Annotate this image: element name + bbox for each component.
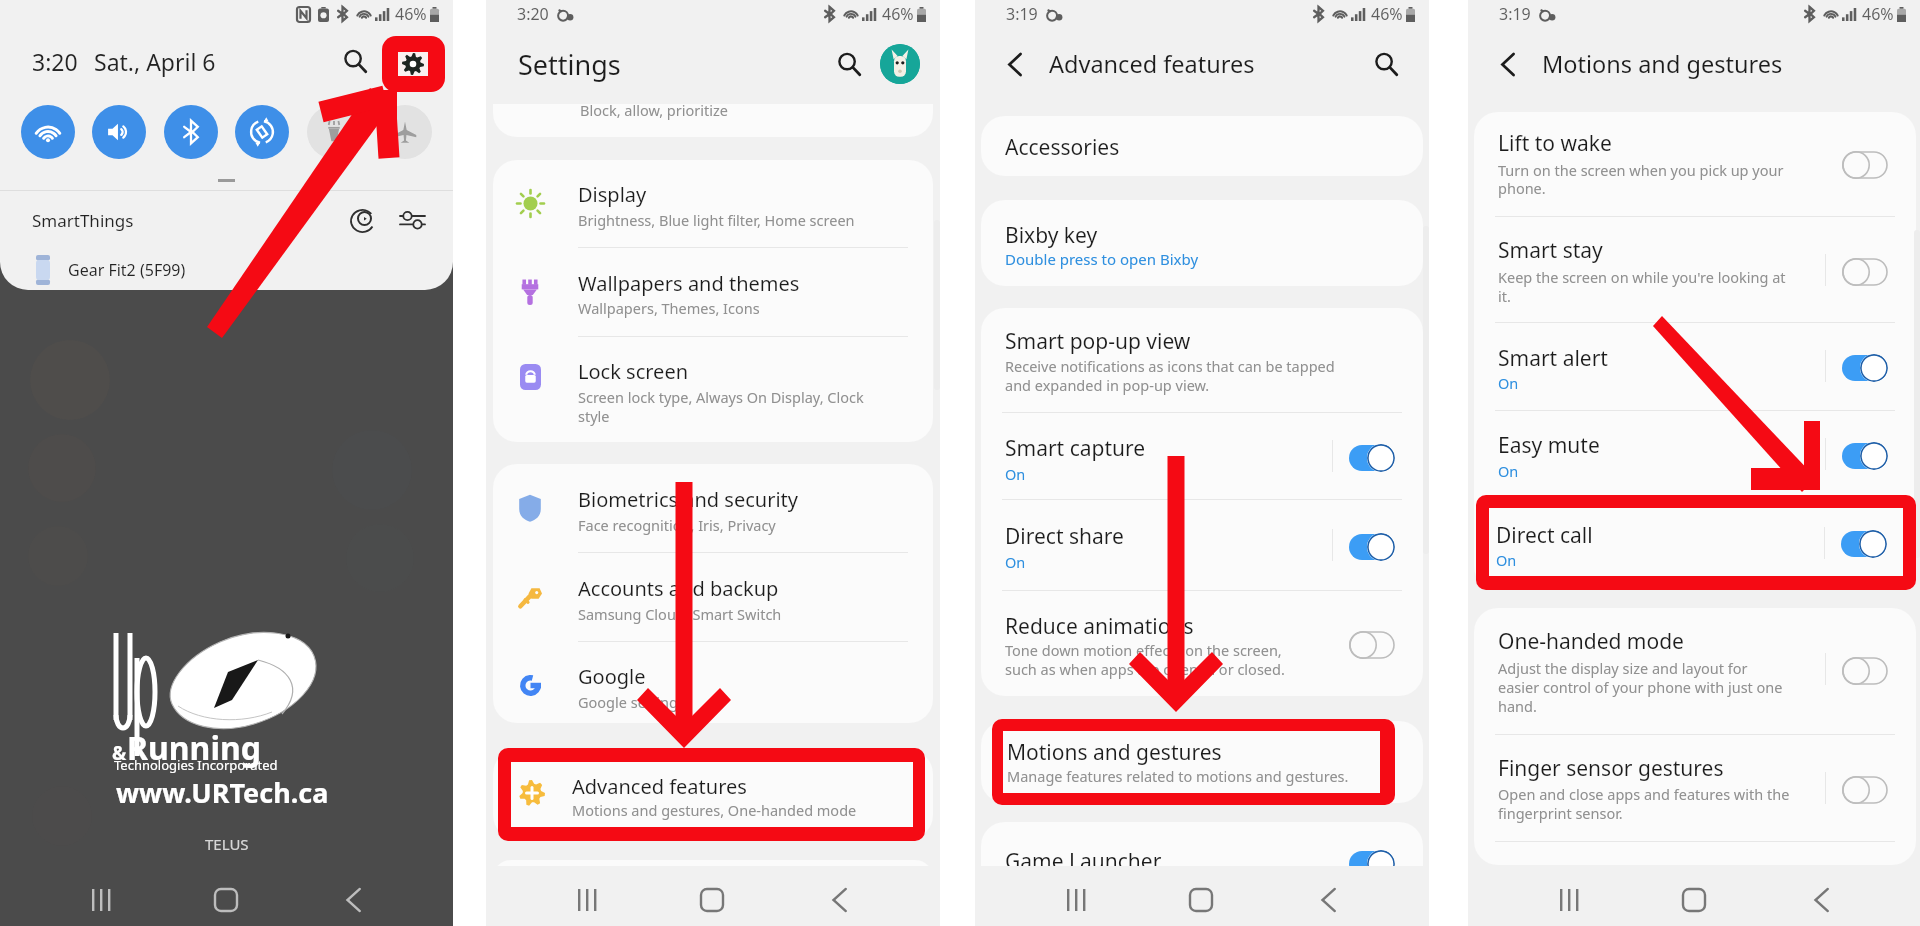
button[interactable]: Search [1365,43,1407,85]
button[interactable]: Quick setting toggle [235,105,289,159]
staticText: fingerprint sensor. [1498,803,1623,823]
staticText: & [112,740,127,766]
button[interactable] [1474,619,1916,709]
button[interactable] [493,762,933,814]
button[interactable] [1474,746,1916,816]
staticText: Advanced features [1049,48,1255,80]
button[interactable]: Back [1793,872,1849,926]
staticText: Lock screen [578,358,689,385]
button[interactable]: Device options [397,205,427,235]
button[interactable]: Quick setting toggle [378,105,432,159]
button[interactable]: Toggle switch [1842,258,1888,286]
button[interactable]: Home [1666,872,1722,926]
button[interactable]: Toggle switch [1349,850,1395,878]
button[interactable]: Settings [391,41,431,81]
button[interactable] [493,654,933,706]
staticText: it. [1498,286,1511,306]
button[interactable] [1489,508,1903,576]
button[interactable] [511,762,913,827]
button[interactable] [1474,228,1916,298]
button[interactable] [1474,423,1916,479]
staticText: Advanced features [578,771,753,798]
staticText: 46% [1862,3,1894,25]
button[interactable] [493,349,933,419]
button[interactable] [1003,731,1380,793]
button[interactable] [1474,512,1916,568]
staticText: Turn on the screen when you pick up your [1498,160,1784,180]
button[interactable]: Scan devices [347,205,377,235]
staticText: Settings [518,46,621,83]
button[interactable]: Toggle switch [1842,151,1888,179]
button[interactable] [981,721,1423,803]
button[interactable] [1474,121,1916,191]
button[interactable]: Toggle switch [1349,631,1395,659]
button[interactable]: Search [335,41,375,81]
button[interactable]: Recent apps [1540,872,1596,926]
staticText: On [1005,464,1026,484]
button[interactable]: Recent apps [72,872,128,926]
button[interactable] [1474,336,1916,392]
staticText: Lift to wake [1498,129,1612,158]
button[interactable] [981,426,1423,482]
staticText: Google [578,663,646,690]
button[interactable]: Account profile [880,44,920,84]
button[interactable] [981,116,1423,176]
button[interactable] [981,600,1423,690]
staticText: Open and close apps and features with th… [1498,784,1790,804]
staticText: Wallpapers, Themes, Icons [578,298,760,318]
staticText: Manage features related to motions and g… [1007,766,1349,786]
button[interactable]: Toggle switch [1841,530,1887,558]
button[interactable]: Toggle switch [1842,657,1888,685]
button[interactable]: Toggle switch [1842,776,1888,804]
button[interactable]: Home [1173,872,1229,926]
button[interactable] [493,172,933,224]
staticText: Block, allow, prioritize [580,104,728,120]
staticText: 3:19 [1006,3,1038,25]
staticText: Finger sensor gestures [1498,754,1724,783]
button[interactable]: Navigate back [1488,44,1528,84]
button[interactable]: Home [198,872,254,926]
button[interactable] [493,261,933,313]
staticText: Direct call [1498,520,1595,549]
button[interactable]: Toggle switch [1349,444,1395,472]
button[interactable] [493,566,933,618]
button[interactable]: Search settings [828,43,870,85]
staticText: 3:20 [517,3,549,25]
button[interactable] [981,308,1423,404]
button[interactable]: Quick setting toggle [21,105,75,159]
staticText: Motions and gestures [1542,48,1783,80]
button[interactable]: Back [811,872,867,926]
staticText: Receive notifications as icons that can … [1005,356,1335,376]
button[interactable]: Back [325,872,381,926]
button[interactable]: Home [684,872,740,926]
staticText: Adjust the display size and layout for [1498,658,1748,678]
button[interactable] [981,514,1423,570]
staticText: 3:19 [1499,3,1531,25]
button[interactable]: Toggle switch [1349,533,1395,561]
button[interactable]: Toggle switch [1842,530,1888,558]
staticText: Technologies Incorporated [114,756,278,774]
button[interactable]: Toggle switch [1842,442,1888,470]
button[interactable]: Recent apps [558,872,614,926]
staticText: phone. [1498,178,1546,198]
button[interactable] [981,200,1423,286]
button[interactable]: Navigate back [995,44,1035,84]
staticText: Keep the screen on while you're looking … [1498,267,1786,287]
button[interactable]: Toggle switch [1842,354,1888,382]
button[interactable] [493,477,933,529]
staticText: Samsung Cloud, Smart Switch [578,604,782,624]
button[interactable]: Quick setting toggle [307,105,361,159]
staticText: easier control of your phone with just o… [1498,677,1783,697]
staticText: such as when apps are opened or closed. [1005,659,1285,679]
staticText: 46% [395,3,427,25]
staticText: Direct call [1496,521,1593,550]
button[interactable]: Back [1300,872,1356,926]
button[interactable]: Quick setting toggle [92,105,146,159]
button[interactable]: Quick setting toggle [164,105,218,159]
button[interactable]: Recent apps [1047,872,1103,926]
staticText: Direct share [1005,522,1124,551]
staticText: Face recognition, Iris, Privacy [578,515,776,535]
staticText: TELUS [205,834,249,854]
staticText: Gear Fit2 (5F99) [68,259,186,281]
staticText: 46% [1371,3,1403,25]
